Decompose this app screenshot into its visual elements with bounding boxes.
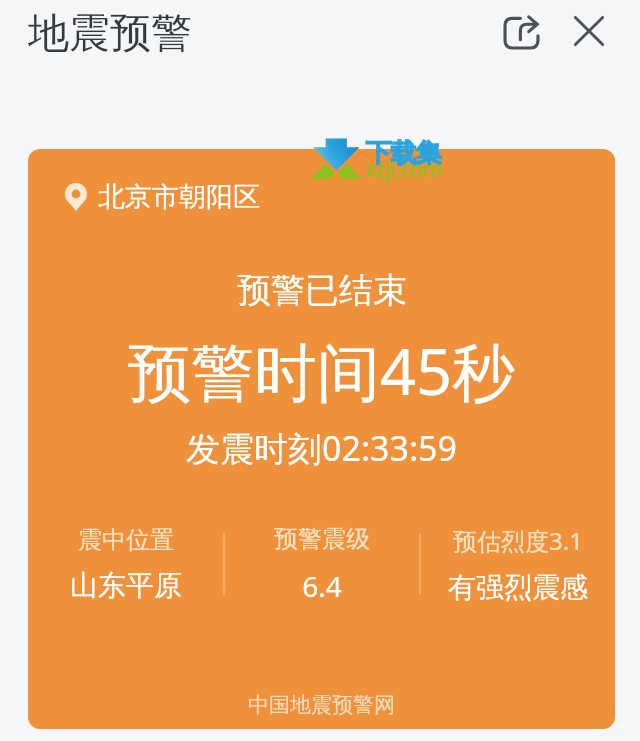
button[interactable]: 预警震级 xyxy=(225,524,419,605)
staticText: 中国地震预警网 xyxy=(248,692,395,718)
staticText: 预估烈度3.1 xyxy=(453,524,583,557)
staticText: 地震预警 xyxy=(28,8,192,60)
button[interactable]: 预估烈度3.1 xyxy=(421,524,615,605)
staticText: 发震时刻02:33:59 xyxy=(186,425,457,471)
staticText: 预警时间45秒 xyxy=(128,328,516,414)
staticText: 有强烈震感 xyxy=(448,570,588,605)
staticText: 北京市朝阳区 xyxy=(98,180,260,214)
staticText: xzji.com xyxy=(365,155,442,184)
staticText: 预警已结束 xyxy=(237,269,407,312)
staticText: 山东平原 xyxy=(70,568,182,603)
button[interactable]: 震中位置 xyxy=(28,525,223,603)
staticText: 下载集 xyxy=(366,137,441,170)
button[interactable]: 北京市朝阳区 xyxy=(65,180,260,214)
staticText: 震中位置 xyxy=(78,525,174,555)
staticText: 预警震级 xyxy=(274,524,370,554)
button[interactable]: 北京市朝阳区 xyxy=(28,149,615,729)
button[interactable]: Close xyxy=(563,5,615,57)
staticText: 6.4 xyxy=(302,567,342,605)
button[interactable]: Share xyxy=(495,5,547,57)
